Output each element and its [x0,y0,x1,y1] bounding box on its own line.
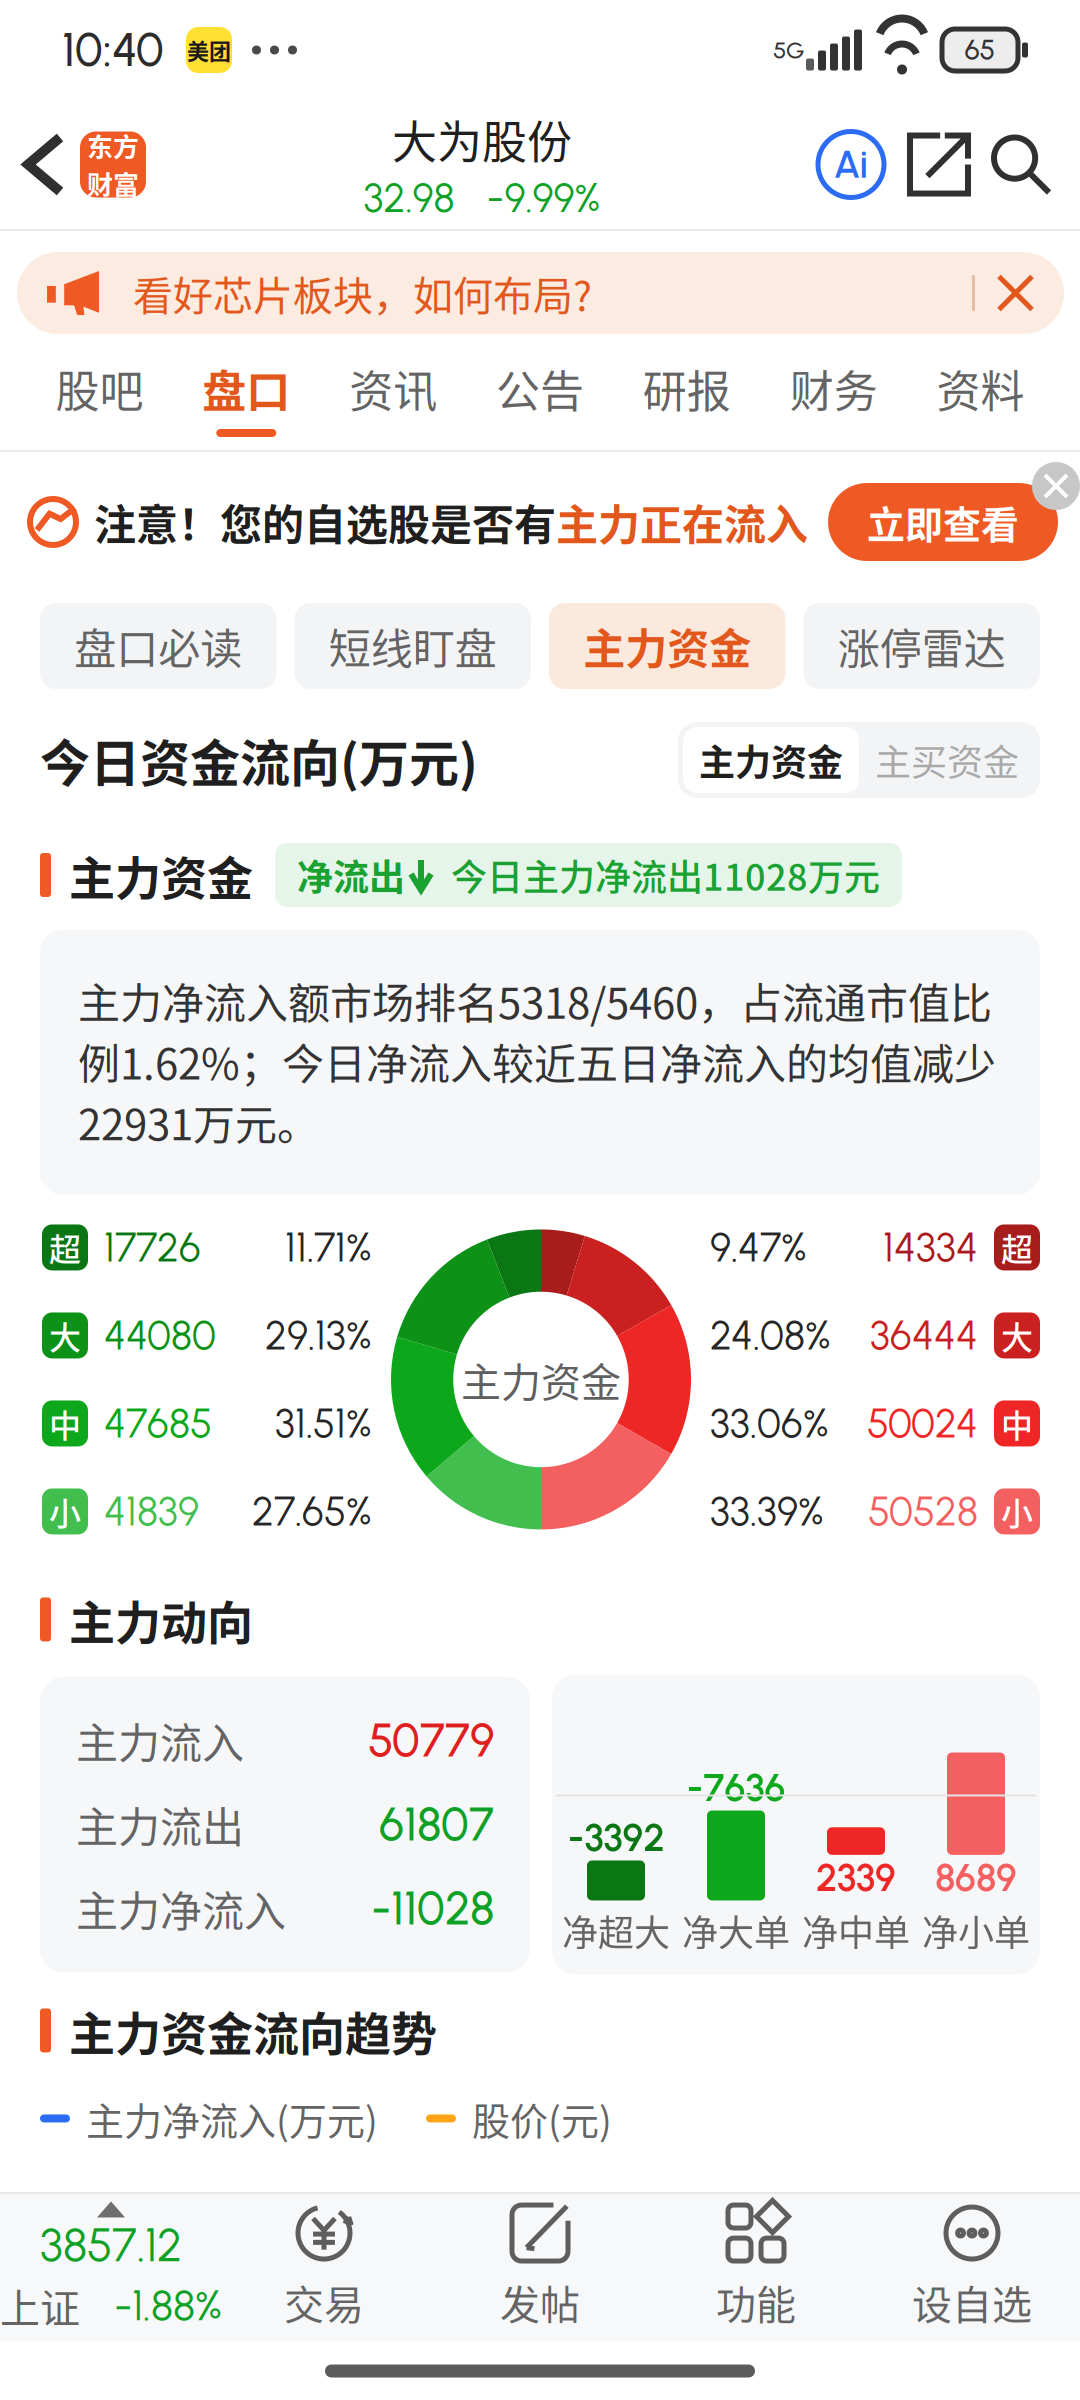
staticText: 中 [49,1400,81,1447]
button[interactable]: 公告 [467,348,613,450]
staticText: 主力资金 [69,842,253,908]
staticText: 主力动向 [69,1586,253,1653]
staticText: 47685 [104,1399,212,1447]
staticText: 今日资金流向(万元) [40,724,478,796]
staticText: 大 [49,1312,81,1359]
button[interactable]: 资讯 [320,348,467,450]
button[interactable]: 交易 [216,2194,432,2342]
staticText: 净超大 [562,1904,670,1956]
staticText: 净流出 [297,849,405,901]
staticText: 32.98 [363,174,454,222]
staticText: 33.39% [710,1487,824,1535]
staticText: 主力资金 [583,616,751,676]
staticText: 主力正在流入 [556,492,808,552]
staticText: 功能 [716,2273,796,2331]
staticText: 50024 [867,1399,978,1447]
button[interactable]: 主力资金 [683,727,859,793]
staticText: -11028 [371,1881,494,1936]
button[interactable]: 发帖 [432,2194,648,2342]
staticText: 10:40 [62,22,164,78]
staticText: 主力流出 [76,1794,244,1855]
staticText: 公告 [496,357,584,420]
staticText: 财富 [87,164,139,202]
staticText: 主力净流入(万元) [86,2091,378,2146]
staticText: 主力净流入额市场排名5318/5460，占流通市值比例1.62%；今日净流入较近… [78,970,996,1152]
staticText: 9.47% [710,1223,807,1271]
button[interactable]: 研报 [613,348,760,450]
staticText: 8689 [935,1855,1017,1900]
staticText: 大 [1001,1312,1033,1359]
staticText: 31.51% [275,1399,372,1447]
staticText: 上证 [0,2277,80,2334]
staticText: -9.99% [486,174,600,222]
button[interactable]: 涨停雷达 [803,603,1040,689]
staticText: 中 [1001,1400,1033,1447]
staticText: Ai [833,142,868,187]
button[interactable]: Close advertisement [1032,462,1080,510]
staticText: 24.08% [710,1311,831,1359]
button[interactable]: 主买资金 [859,727,1035,793]
staticText: 主力资金 [461,1350,621,1408]
staticText: 财务 [790,357,878,420]
staticText: 注意！ [94,492,220,552]
staticText: 看好芯片板块，如何布局? [133,264,592,322]
staticText: 资讯 [349,357,437,420]
staticText: 盘口 [202,357,290,420]
staticText: 股价(元) [472,2091,612,2146]
staticText: 41839 [104,1487,199,1535]
staticText: 东方 [87,127,139,164]
staticText: 短线盯盘 [329,616,497,676]
button[interactable]: Share [884,117,992,211]
staticText: 美团 [187,34,231,66]
staticText: 交易 [284,2273,364,2331]
staticText: 27.65% [252,1487,372,1535]
button[interactable]: 财务 [760,348,907,450]
staticText: 50779 [368,1713,494,1768]
staticText: 涨停雷达 [838,616,1006,676]
staticText: -7636 [686,1765,785,1810]
button[interactable]: 盘口必读 [40,603,276,689]
staticText: 资料 [937,357,1025,420]
button[interactable]: 功能 [648,2194,864,2342]
button[interactable]: AI assistant [818,131,884,197]
button[interactable]: 看好芯片板块，如何布局? [0,231,1080,348]
staticText: 小 [1001,1488,1033,1535]
staticText: 61807 [379,1797,494,1852]
staticText: 5G [773,36,804,64]
staticText: 股吧 [55,357,143,420]
button[interactable]: 盘口 [173,348,320,450]
button[interactable]: 短线盯盘 [294,603,531,689]
staticText: 50528 [868,1487,978,1535]
staticText: 3857.12 [40,2217,182,2273]
staticText: 36444 [870,1311,978,1359]
staticText: 立即查看 [867,494,1019,549]
staticText: 今日主力净流出11028万元 [451,849,880,901]
button[interactable]: 设自选 [864,2194,1080,2342]
staticText: 14334 [883,1223,978,1271]
button[interactable]: Back [0,101,80,227]
staticText: 超 [1001,1224,1033,1271]
button[interactable]: 注意！ [0,462,1080,582]
staticText: 33.06% [710,1399,829,1447]
staticText: 小 [49,1488,81,1535]
staticText: 盘口必读 [74,616,242,676]
staticText: -1.88% [114,2280,222,2331]
staticText: 主力资金流向趋势 [69,1997,437,2064]
staticText: 2339 [816,1855,896,1900]
staticText: 65 [964,33,995,67]
staticText: 发帖 [500,2273,580,2331]
staticText: 研报 [643,357,731,420]
button[interactable]: 主力资金 [549,603,785,689]
staticText: 44080 [104,1311,216,1359]
button[interactable]: 股吧 [26,348,173,450]
button[interactable]: 资料 [907,348,1054,450]
staticText: 大为股份 [392,107,572,172]
staticText: 净中单 [802,1904,910,1956]
staticText: 主力净流入 [76,1878,286,1939]
staticText: 29.13% [265,1311,372,1359]
button[interactable]: 3857.12 [0,2194,216,2342]
button[interactable]: Search [992,117,1050,211]
staticText: 主买资金 [875,734,1019,786]
staticText: 11.71% [285,1223,372,1271]
staticText: 您的自选股是否有 [220,492,556,552]
